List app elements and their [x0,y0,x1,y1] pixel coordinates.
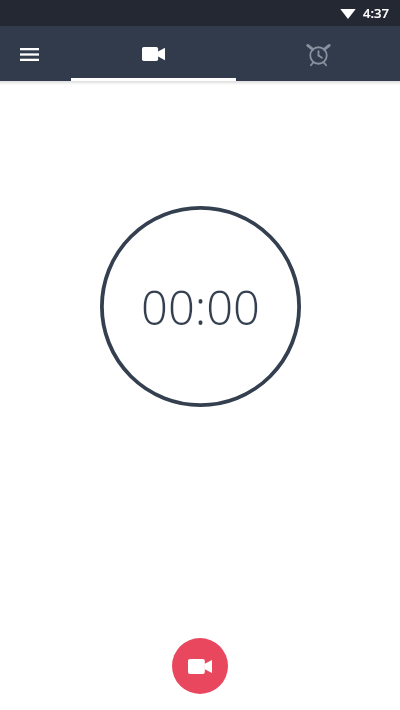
button[interactable]: Start recording [172,638,228,694]
button[interactable]: Video timer tab [71,26,236,81]
staticText: 4:37 [363,4,389,22]
button[interactable]: Alarm tab [236,26,400,81]
button[interactable]: Open navigation drawer [9,34,49,74]
staticText: 00:00 [141,275,260,339]
